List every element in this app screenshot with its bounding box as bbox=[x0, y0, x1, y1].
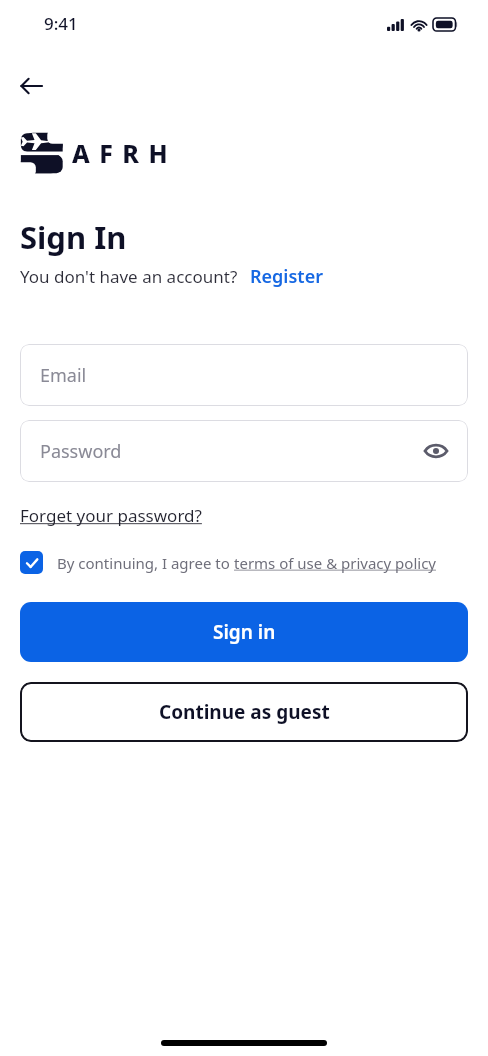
button[interactable]: Email bbox=[20, 344, 468, 406]
staticText: terms of use & privacy policy bbox=[234, 553, 436, 573]
staticText: Register bbox=[250, 264, 323, 289]
button[interactable]: Forget your password? bbox=[20, 504, 202, 527]
staticText: Forget your password? bbox=[20, 504, 202, 527]
staticText: Sign In bbox=[20, 216, 127, 258]
staticText: You don't have an account? bbox=[20, 265, 238, 288]
button[interactable]: Register bbox=[250, 264, 323, 289]
staticText: 9:41 bbox=[44, 12, 78, 35]
staticText: Password bbox=[40, 439, 122, 464]
button[interactable]: Agree to terms bbox=[20, 551, 43, 574]
staticText: Email bbox=[40, 363, 87, 388]
button[interactable]: Sign in bbox=[20, 602, 468, 662]
staticText: Sign in bbox=[213, 619, 276, 645]
staticText: Continue as guest bbox=[159, 699, 330, 725]
staticText: By continuing, I agree to bbox=[57, 553, 234, 573]
button[interactable]: Back bbox=[8, 62, 56, 110]
staticText: A F R H bbox=[72, 136, 170, 170]
button[interactable]: Continue as guest bbox=[20, 682, 468, 742]
button[interactable]: Password bbox=[20, 420, 468, 482]
button[interactable]: Show password bbox=[420, 435, 452, 467]
button[interactable]: terms of use & privacy policy bbox=[234, 553, 436, 573]
